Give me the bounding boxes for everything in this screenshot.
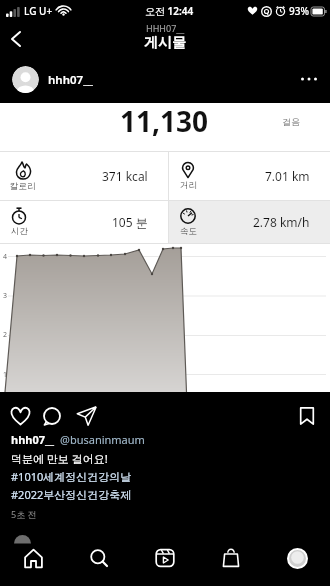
staticText: 1 (3, 370, 8, 380)
staticText: 거리 (180, 180, 197, 191)
staticText: 5초 전 (11, 508, 37, 520)
button[interactable]: 속도 (179, 201, 310, 243)
staticText: hhh07__ (11, 432, 55, 447)
staticText: HHH07__ (146, 22, 185, 34)
staticText: 371 kcal (102, 168, 148, 184)
button[interactable] (0, 545, 66, 586)
staticText: 93% (289, 4, 309, 18)
staticText: 칼로리 (10, 181, 36, 192)
button[interactable]: 칼로리 (10, 152, 148, 200)
staticText: hhh07__ (48, 72, 93, 88)
button[interactable] (198, 545, 264, 586)
button[interactable] (10, 31, 22, 47)
button[interactable]: 거리 (179, 152, 310, 200)
button[interactable] (132, 545, 198, 586)
button[interactable] (42, 406, 62, 426)
staticText: 2 (3, 330, 8, 340)
button[interactable] (66, 545, 132, 586)
staticText: 걸음 (282, 116, 300, 127)
staticText: 3 (3, 291, 8, 301)
staticText: 게시물 (144, 34, 186, 52)
button[interactable]: hhh07__ (0, 55, 330, 103)
staticText: 11,130 (120, 102, 209, 140)
button[interactable] (301, 77, 317, 81)
staticText: 7.01 km (265, 168, 310, 184)
staticText: 속도 (180, 226, 197, 237)
staticText: 오전 12:44 (145, 4, 194, 18)
staticText: #1010세계정신건강의날 (11, 469, 132, 484)
staticText: 105 분 (112, 214, 148, 230)
staticText: @busaninmaum (60, 432, 145, 447)
staticText: LG U+ (24, 4, 53, 18)
staticText: 시간 (11, 226, 28, 237)
button[interactable] (10, 406, 31, 427)
button[interactable] (298, 407, 316, 425)
staticText: 덕분에 만보 걸어요! (11, 451, 108, 466)
button[interactable]: 시간 (10, 201, 148, 243)
button[interactable] (76, 405, 98, 427)
staticText: 2.78 km/h (253, 214, 310, 230)
button[interactable] (264, 545, 330, 586)
staticText: #2022부산정신건강축제 (11, 487, 132, 502)
staticText: 4 (3, 252, 8, 262)
